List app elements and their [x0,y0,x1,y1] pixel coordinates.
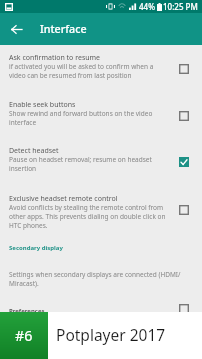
staticText: #6 [15,326,33,345]
button[interactable]: Detect headset [0,146,202,190]
staticText: Settings when secondary displays are con… [9,270,185,288]
staticText: Show rewind and forward buttons on the v… [9,109,167,127]
button[interactable]: Ask confirmation to resume [0,53,202,97]
button[interactable]: Enable seek buttons [0,100,202,144]
staticText: 44% [139,1,155,12]
button[interactable]: Exclusive headset remote control [0,194,202,238]
button[interactable]: Navigate up [4,17,28,41]
button[interactable]: Disabled [179,205,189,215]
staticText: Detect headset [9,146,59,156]
staticText: Ask confirmation to resume [9,53,101,63]
staticText: Interface [40,22,87,37]
staticText: Pause on headset removal; resume on head… [9,155,167,173]
button[interactable]: Disabled [179,111,189,121]
button[interactable]: Disabled [179,64,189,74]
staticText: 10:25 PM [163,1,198,12]
staticText: Enable seek buttons [9,100,76,110]
staticText: Secondary display [9,244,63,252]
staticText: Exclusive headset remote control [9,194,118,204]
button[interactable]: Enabled [179,157,189,167]
staticText: Potplayer 2017 [56,324,166,345]
staticText: Avoid conflicts by stealing the remote c… [9,203,167,230]
staticText: Preferences [9,307,45,315]
staticText: if activated you will be asked to confir… [9,62,167,80]
button[interactable]: Disabled [179,304,189,314]
